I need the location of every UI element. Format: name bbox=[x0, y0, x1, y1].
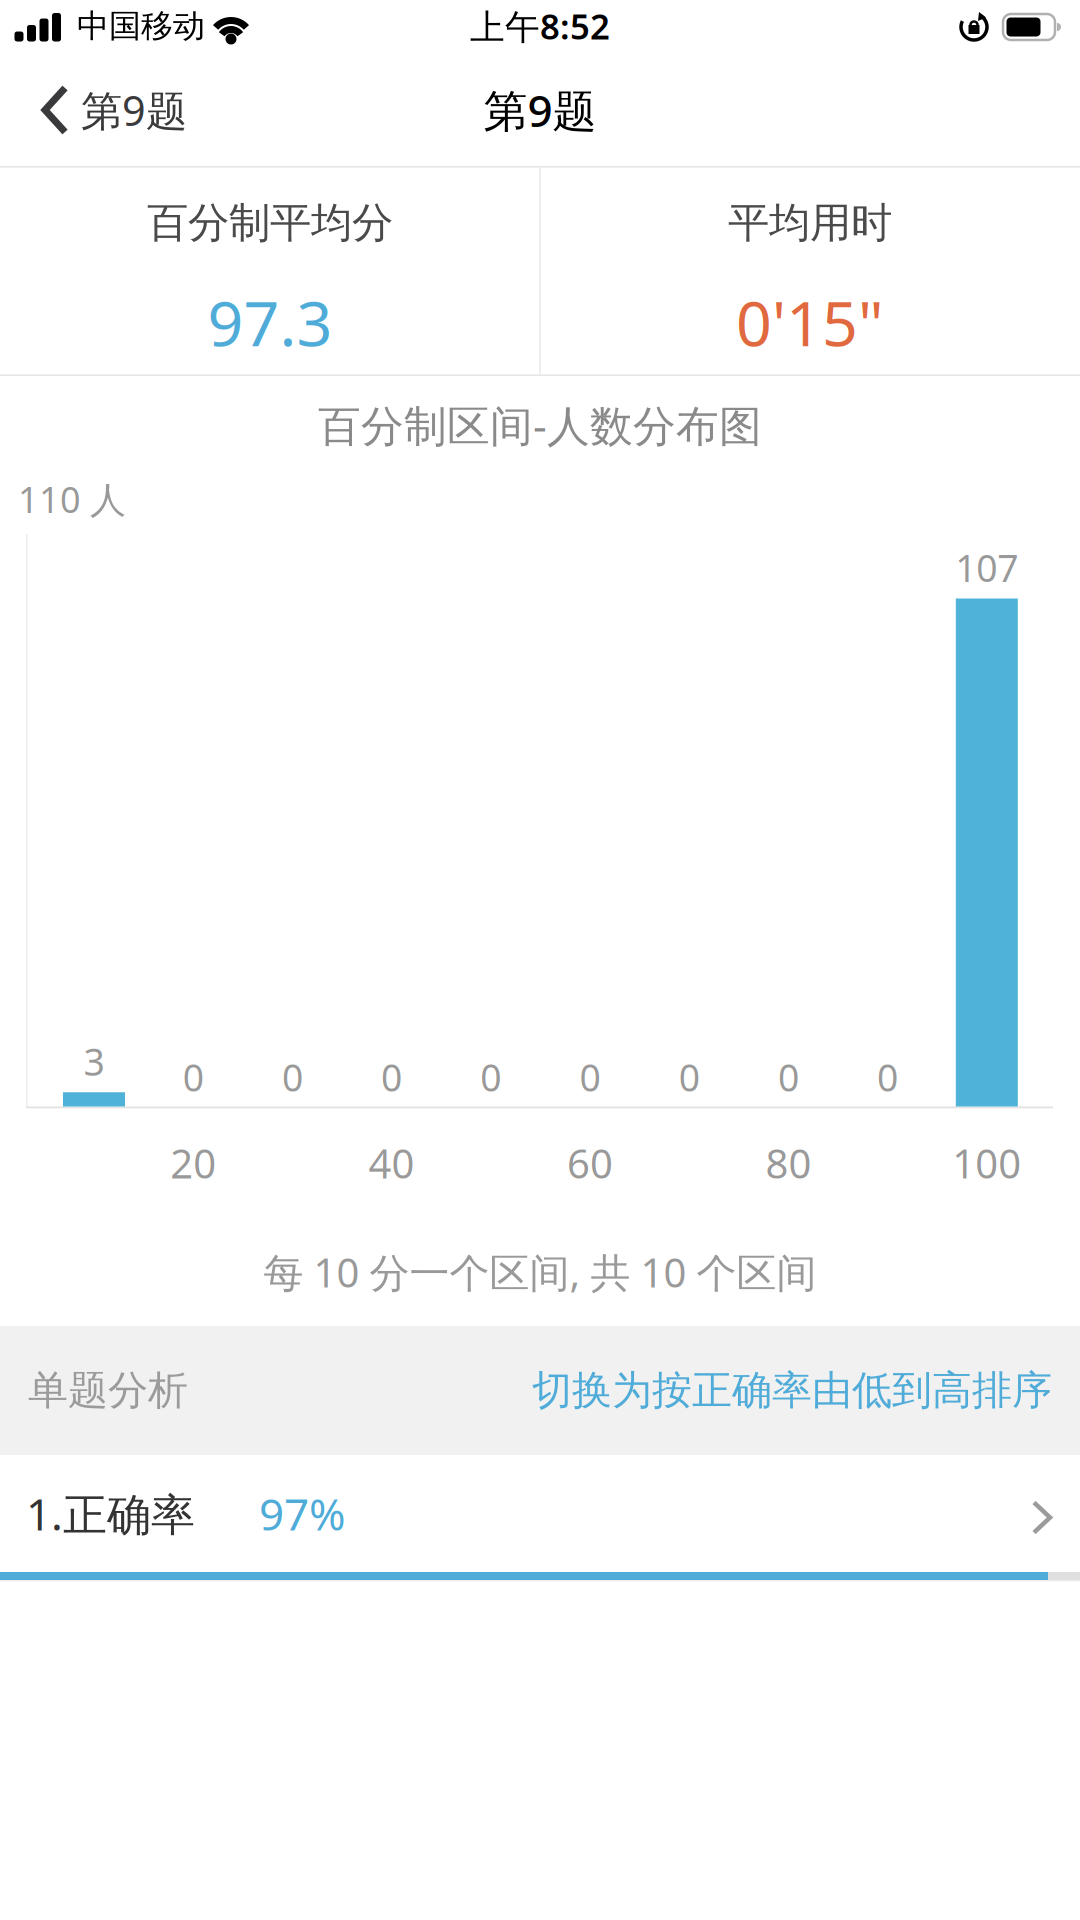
staticText: 0 bbox=[480, 1052, 501, 1102]
staticText: 0 bbox=[183, 1052, 204, 1102]
staticText: 0 bbox=[579, 1052, 600, 1102]
staticText: 107 bbox=[955, 543, 1018, 592]
staticText: 0 bbox=[877, 1052, 898, 1102]
staticText: 80 bbox=[765, 1136, 811, 1189]
staticText: 百分制区间-人数分布图 bbox=[318, 397, 762, 453]
staticText: 中国移动 bbox=[77, 6, 205, 46]
staticText: 40 bbox=[369, 1136, 415, 1189]
staticText: 97% bbox=[259, 1484, 346, 1543]
staticText: 切换为按正确率由低到高排序 bbox=[532, 1366, 1052, 1415]
staticText: 60 bbox=[567, 1136, 613, 1189]
button[interactable]: 第9题 bbox=[41, 83, 187, 137]
staticText: 3 bbox=[83, 1036, 104, 1086]
staticText: 百分制平均分 bbox=[147, 198, 393, 248]
staticText: 第9题 bbox=[483, 81, 596, 139]
staticText: 上午8:52 bbox=[470, 3, 610, 49]
staticText: 0 bbox=[381, 1052, 402, 1102]
staticText: 110 人 bbox=[18, 475, 126, 523]
staticText: 0 bbox=[679, 1052, 700, 1102]
staticText: 97.3 bbox=[207, 280, 332, 364]
button[interactable]: 1.正确率 bbox=[0, 1455, 1080, 1572]
staticText: 每 10 分一个区间, 共 10 个区间 bbox=[263, 1245, 816, 1298]
staticText: 1.正确率 bbox=[26, 1484, 195, 1543]
staticText: 第9题 bbox=[81, 83, 187, 137]
staticText: 20 bbox=[170, 1136, 216, 1189]
staticText: 0 bbox=[778, 1052, 799, 1102]
staticText: 平均用时 bbox=[728, 198, 892, 248]
staticText: 0'15" bbox=[736, 280, 884, 364]
button[interactable]: 切换为按正确率由低到高排序 bbox=[532, 1366, 1052, 1415]
staticText: 0 bbox=[282, 1052, 303, 1102]
staticText: 单题分析 bbox=[28, 1366, 188, 1415]
staticText: 100 bbox=[952, 1136, 1021, 1189]
